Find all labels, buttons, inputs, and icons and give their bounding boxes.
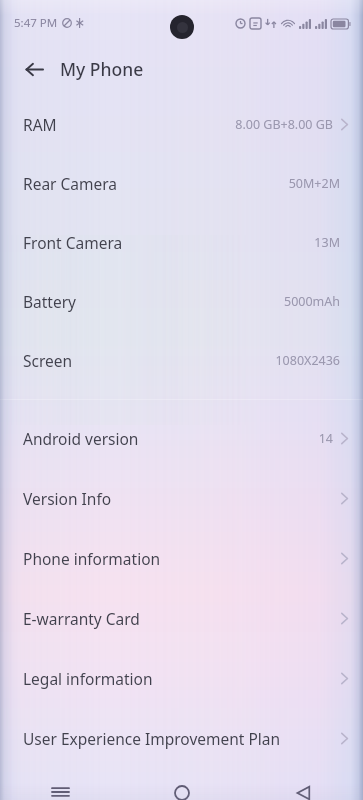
button[interactable]: Version Info: [0, 468, 363, 528]
button[interactable]: Screen: [0, 331, 363, 390]
button[interactable]: RAM: [0, 95, 363, 154]
staticText: 8.00 GB+8.00 GB: [235, 116, 333, 133]
button[interactable]: Phone information: [0, 528, 363, 588]
staticText: Rear Camera: [23, 173, 118, 194]
button[interactable]: E-warranty Card: [0, 588, 363, 648]
button[interactable]: Legal information: [0, 648, 363, 708]
button[interactable]: Android version: [0, 408, 363, 468]
staticText: 14: [318, 430, 333, 447]
staticText: Screen: [23, 350, 73, 371]
staticText: Battery: [23, 291, 77, 312]
staticText: 50M+2M: [288, 175, 340, 192]
button[interactable]: Home: [121, 774, 242, 800]
staticText: User Experience Improvement Plan: [23, 728, 281, 749]
staticText: Phone information: [23, 548, 161, 569]
button[interactable]: Back: [242, 774, 363, 800]
button[interactable]: Recents: [0, 774, 121, 800]
staticText: 1080X2436: [275, 352, 340, 369]
staticText: 5:47 PM: [14, 15, 58, 31]
button[interactable]: Front Camera: [0, 213, 363, 272]
button[interactable]: Battery: [0, 272, 363, 331]
staticText: Front Camera: [23, 232, 123, 253]
button[interactable]: User Experience Improvement Plan: [0, 708, 363, 768]
button[interactable]: Rear Camera: [0, 154, 363, 213]
staticText: My Phone: [60, 57, 144, 81]
staticText: E-warranty Card: [23, 608, 140, 629]
staticText: Android version: [23, 428, 139, 449]
staticText: Version Info: [23, 488, 112, 509]
staticText: 5000mAh: [283, 293, 340, 310]
staticText: RAM: [23, 114, 57, 135]
button[interactable]: Back: [17, 52, 51, 86]
staticText: Legal information: [23, 668, 153, 689]
staticText: 13M: [314, 234, 340, 251]
